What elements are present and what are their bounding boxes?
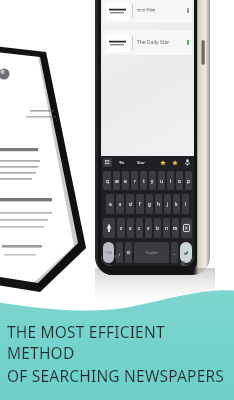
staticText: The Daily Star bbox=[137, 39, 187, 46]
staticText: t bbox=[143, 178, 145, 184]
button[interactable]: x bbox=[127, 218, 134, 238]
staticText: বাংলা নিউজ bbox=[137, 7, 187, 14]
button[interactable]: Key bbox=[181, 218, 192, 238]
button[interactable]: r bbox=[131, 171, 138, 190]
button[interactable]: e bbox=[122, 171, 129, 190]
button[interactable]: p bbox=[185, 171, 192, 190]
button[interactable]: l bbox=[182, 194, 189, 214]
button[interactable]: স্টার bbox=[118, 161, 126, 165]
staticText: j bbox=[167, 201, 169, 207]
staticText: r bbox=[134, 178, 136, 184]
button[interactable]: u bbox=[158, 171, 165, 190]
staticText: c bbox=[138, 225, 141, 231]
staticText: OF SEARCHING NEWSPAPERS bbox=[7, 365, 225, 386]
staticText: m bbox=[173, 225, 178, 231]
button[interactable]: Keyboard settings bbox=[103, 158, 112, 167]
staticText: x bbox=[129, 225, 132, 231]
staticText: v bbox=[147, 225, 150, 231]
staticText: l bbox=[185, 201, 187, 207]
button[interactable]: w bbox=[113, 171, 120, 190]
staticText: e bbox=[124, 178, 127, 184]
button[interactable]: বাংলা নিউজ bbox=[103, 0, 192, 23]
staticText: a bbox=[109, 201, 112, 207]
staticText: , bbox=[119, 250, 121, 256]
button[interactable]: a bbox=[106, 194, 114, 214]
staticText: . bbox=[174, 250, 176, 256]
staticText: u bbox=[160, 178, 163, 184]
staticText: স্টার bbox=[119, 161, 125, 165]
staticText: h bbox=[157, 201, 160, 207]
button[interactable]: y bbox=[149, 171, 156, 190]
button[interactable]: . bbox=[171, 242, 178, 263]
button[interactable]: q bbox=[103, 171, 111, 190]
staticText: g bbox=[148, 201, 151, 207]
button[interactable]: Emoji bbox=[159, 159, 167, 167]
button[interactable]: c bbox=[136, 218, 143, 238]
staticText: n bbox=[165, 225, 168, 231]
staticText: English bbox=[146, 250, 158, 255]
staticText: w bbox=[115, 178, 119, 184]
staticText: f bbox=[139, 201, 141, 207]
button[interactable]: f bbox=[136, 194, 144, 214]
staticText: q bbox=[106, 178, 109, 184]
button[interactable]: Voice input bbox=[183, 158, 192, 167]
staticText: s bbox=[119, 201, 122, 207]
staticText: y bbox=[151, 178, 154, 184]
button[interactable]: d bbox=[126, 194, 134, 214]
button[interactable]: English bbox=[134, 242, 169, 263]
button[interactable]: o bbox=[176, 171, 183, 190]
staticText: o bbox=[178, 178, 181, 184]
button[interactable]: Star bbox=[136, 160, 146, 166]
button[interactable]: b bbox=[154, 218, 161, 238]
button[interactable]: , bbox=[116, 242, 123, 263]
button[interactable]: t bbox=[140, 171, 147, 190]
button[interactable]: Key bbox=[125, 242, 132, 263]
button[interactable]: Emoji bbox=[171, 159, 179, 167]
staticText: d bbox=[129, 201, 132, 207]
button[interactable]: v bbox=[145, 218, 152, 238]
button[interactable]: Search bbox=[180, 242, 192, 263]
button[interactable]: Key bbox=[103, 218, 115, 238]
button[interactable]: k bbox=[173, 194, 180, 214]
button[interactable]: z bbox=[117, 218, 125, 238]
staticText: p bbox=[187, 178, 190, 184]
staticText: THE MOST EFFICIENT METHOD bbox=[7, 321, 230, 363]
button[interactable]: The Daily Star bbox=[103, 30, 192, 55]
staticText: ?123 bbox=[105, 251, 112, 255]
button[interactable]: h bbox=[155, 194, 162, 214]
staticText: Star bbox=[137, 160, 145, 166]
staticText: k bbox=[175, 201, 178, 207]
staticText: i bbox=[170, 178, 172, 184]
button[interactable]: Symbols bbox=[103, 242, 114, 263]
button[interactable]: n bbox=[163, 218, 170, 238]
button[interactable]: m bbox=[172, 218, 179, 238]
button[interactable]: j bbox=[164, 194, 171, 214]
staticText: z bbox=[120, 225, 123, 231]
staticText: b bbox=[156, 225, 159, 231]
button[interactable]: g bbox=[146, 194, 153, 214]
button[interactable]: s bbox=[116, 194, 124, 214]
button[interactable]: i bbox=[167, 171, 174, 190]
